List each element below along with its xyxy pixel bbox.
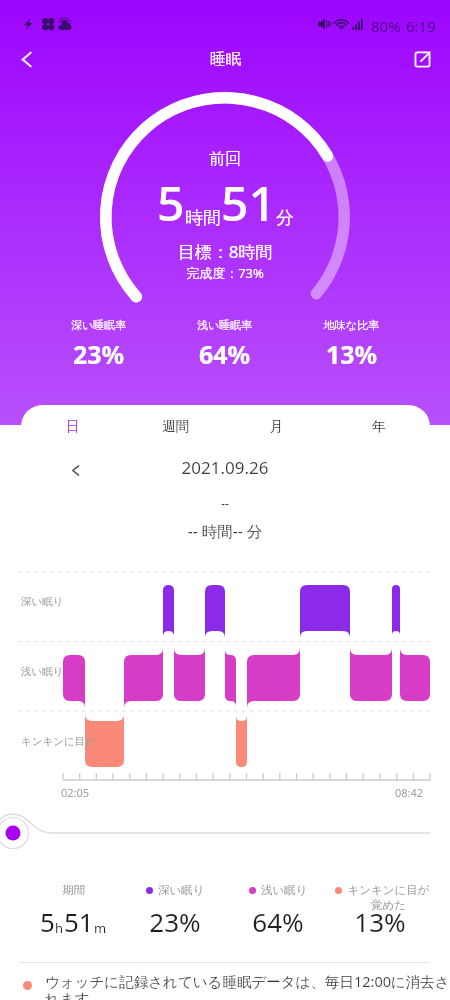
staticText: 分 <box>276 207 294 230</box>
staticText: 年 <box>372 418 386 435</box>
staticText: h <box>55 919 64 937</box>
staticText: 6:19 <box>406 16 436 36</box>
staticText: 23% <box>115 904 235 939</box>
staticText: キンキンに目が <box>21 735 96 748</box>
staticText: 時間 <box>185 207 221 230</box>
button[interactable]: Back <box>6 39 46 79</box>
staticText: -- <box>0 495 450 511</box>
staticText: 13% <box>320 904 440 939</box>
staticText: 深い睡眠率 <box>71 318 127 332</box>
staticText: 51 <box>64 904 94 939</box>
button[interactable]: Share <box>402 39 442 79</box>
button[interactable]: 週間 <box>124 405 226 448</box>
staticText: -- 時間-- 分 <box>0 520 450 541</box>
staticText: 目標：8時間 <box>0 240 450 263</box>
staticText: 睡眠 <box>210 49 241 69</box>
staticText: ウォッチに記録されている睡眠データは、毎日12:00に消去されます <box>45 971 450 1000</box>
button[interactable]: Previous day <box>62 457 88 483</box>
staticText: 2021.09.26 <box>0 456 450 479</box>
staticText: 前回 <box>0 149 450 169</box>
staticText: 80% <box>371 16 401 36</box>
button[interactable]: 日 <box>21 405 124 448</box>
staticText: 浅い眠り <box>21 665 64 678</box>
staticText: 23% <box>73 337 125 371</box>
staticText: 64% <box>199 337 251 371</box>
button[interactable]: 年 <box>328 405 430 448</box>
staticText: 月 <box>270 418 284 435</box>
staticText: 期間 <box>62 883 85 897</box>
staticText: 週間 <box>162 418 189 435</box>
staticText: 5 <box>157 170 185 235</box>
staticText: 地味な比率 <box>324 318 380 332</box>
button[interactable]: Time scrubber <box>0 805 450 861</box>
staticText: 13% <box>326 337 378 371</box>
staticText: 日 <box>66 418 80 435</box>
button[interactable]: 月 <box>226 405 328 448</box>
staticText: 51 <box>221 170 276 235</box>
staticText: 完成度：73% <box>0 264 450 282</box>
staticText: m <box>94 919 107 937</box>
staticText: 深い眠り <box>158 883 205 897</box>
staticText: 02:05 <box>61 785 90 800</box>
staticText: 浅い眠り <box>261 883 308 897</box>
staticText: 深い眠り <box>21 595 64 608</box>
staticText: 08:42 <box>395 785 424 800</box>
staticText: 浅い睡眠率 <box>197 318 253 332</box>
staticText: 5 <box>40 904 55 939</box>
staticText: 64% <box>218 904 338 939</box>
staticText: キンキンに目が 覚めた <box>347 883 430 913</box>
